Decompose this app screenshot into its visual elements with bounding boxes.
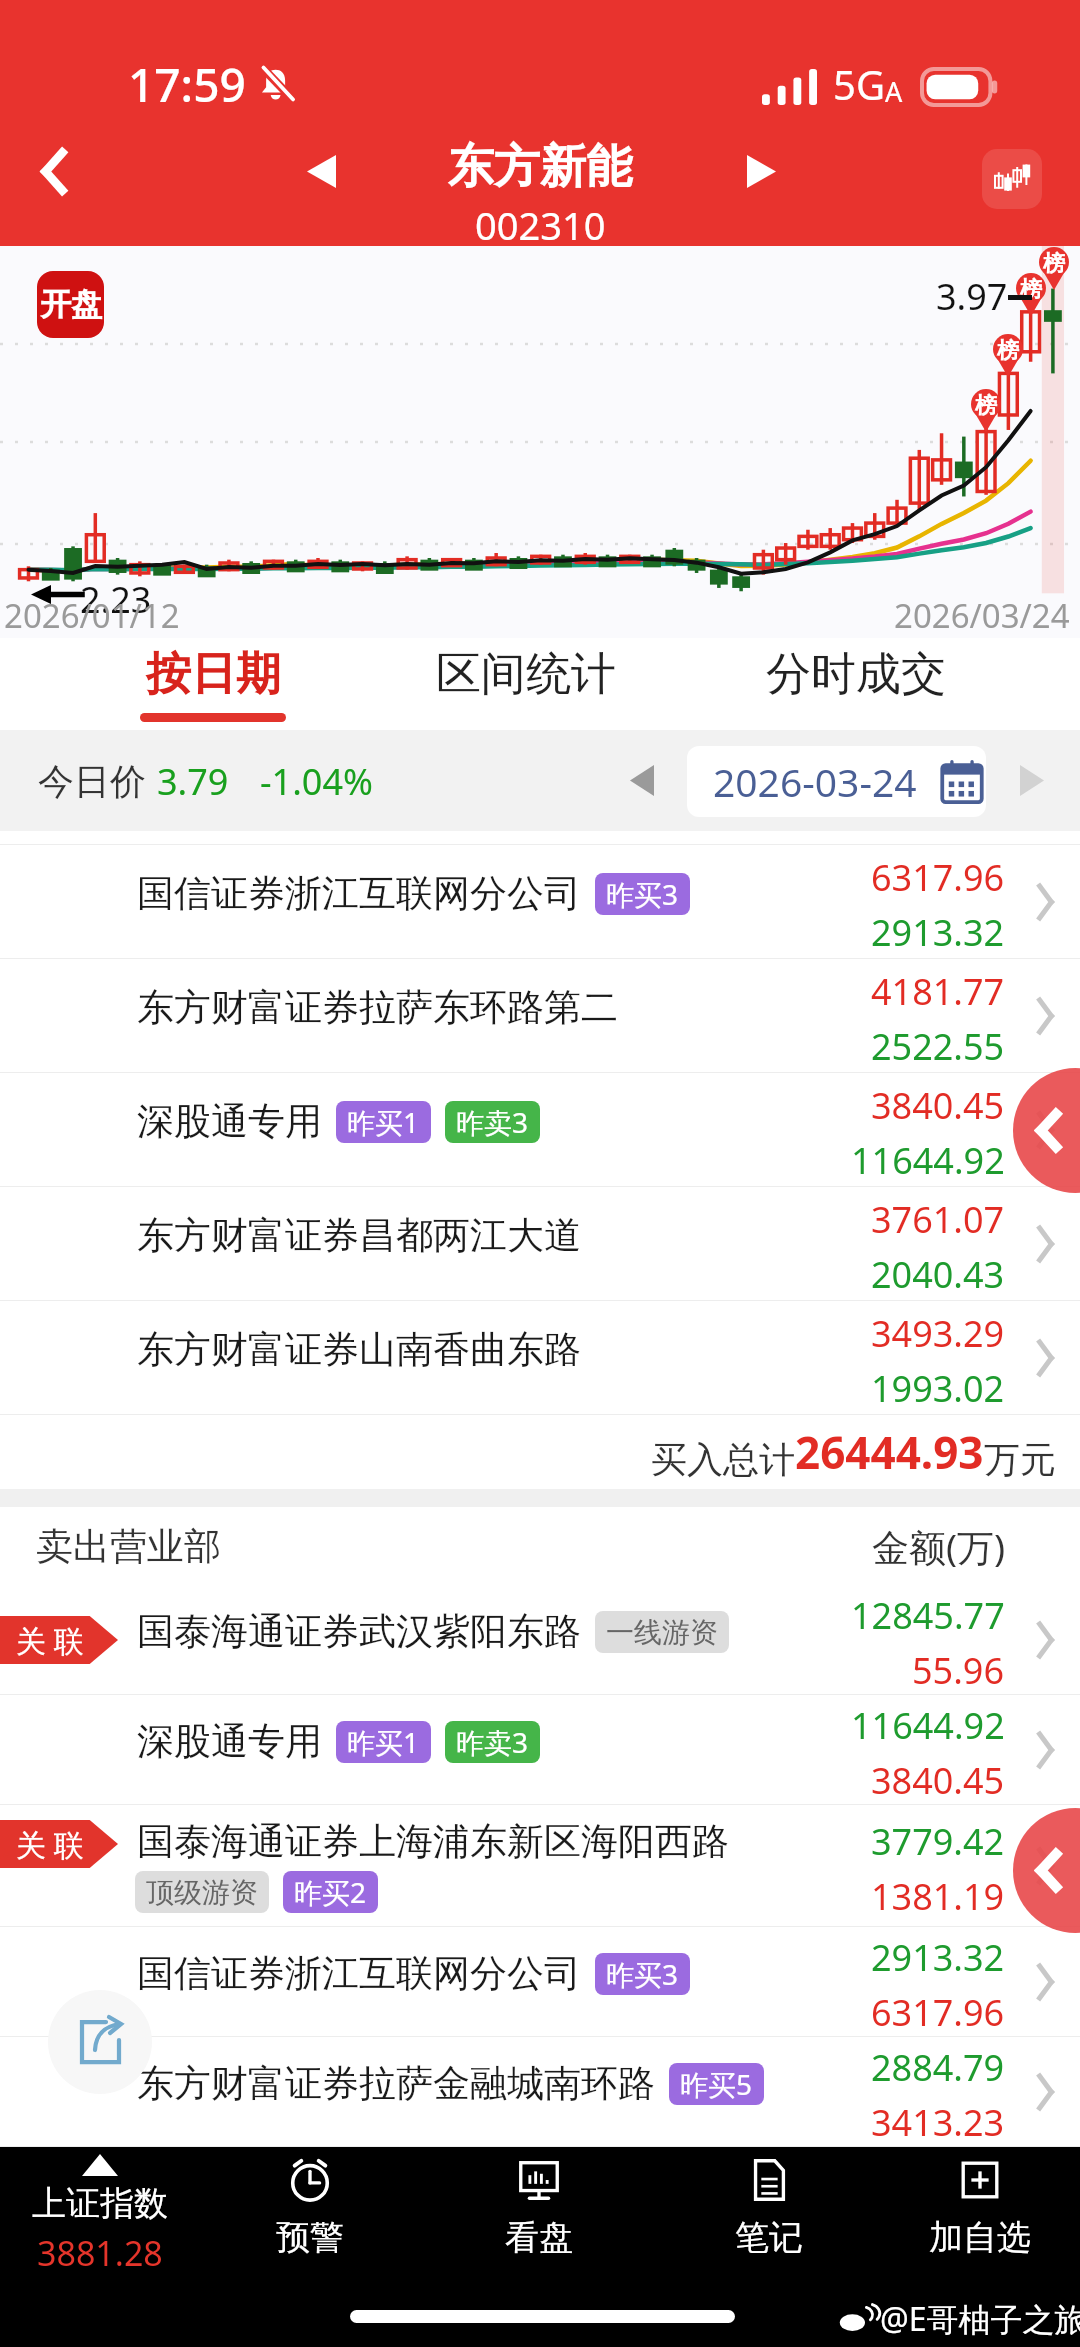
staticText: 国泰海通证券武汉紫阳东路 <box>137 1608 581 1655</box>
staticText: 昨买1 <box>347 1723 420 1761</box>
staticText: 预警 <box>276 2216 344 2259</box>
staticText: 买入总计 <box>651 1437 795 1482</box>
staticText: 3761.07 <box>871 1195 1005 1244</box>
staticText: 3493.29 <box>871 1309 1005 1358</box>
staticText: 看盘 <box>505 2216 573 2259</box>
staticText: 昨买5 <box>680 2065 753 2103</box>
staticText: 榜 <box>1043 250 1065 278</box>
staticText: 关 联 <box>16 1620 84 1661</box>
staticText: 金额(万) <box>872 1521 1006 1572</box>
button[interactable]: Previous day <box>614 752 670 808</box>
button[interactable]: 预警 <box>215 2147 405 2267</box>
button[interactable]: 关 联 <box>0 1585 1080 1695</box>
staticText: 2522.55 <box>871 1022 1005 1071</box>
staticText: 3.79 <box>157 757 229 806</box>
staticText: 东方财富证券拉萨东环路第二 <box>137 984 618 1031</box>
button[interactable]: Back <box>1013 1808 1080 1933</box>
button[interactable]: 区间统计 <box>410 638 641 730</box>
staticText: 按日期 <box>146 646 281 703</box>
button[interactable]: 按日期 <box>97 638 328 730</box>
button[interactable]: 分时成交 <box>740 638 971 730</box>
button[interactable]: Back <box>1013 1068 1080 1193</box>
button[interactable]: Previous stock <box>292 142 350 200</box>
staticText: 6317.96 <box>871 1988 1005 2037</box>
button[interactable]: 东方财富证券昌都两江大道 <box>0 1187 1080 1301</box>
staticText: 2913.32 <box>871 908 1005 957</box>
staticText: 东方财富证券昌都两江大道 <box>137 1212 581 1259</box>
staticText: 关 联 <box>16 1824 84 1865</box>
button[interactable]: 关 联 <box>0 1805 1080 1927</box>
staticText: 2026/03/24 <box>894 593 1070 638</box>
staticText: 国信证券浙江互联网分公司 <box>137 1950 581 1997</box>
staticText: 1993.02 <box>871 1364 1005 1413</box>
staticText: 一线游资 <box>606 1615 718 1650</box>
staticText: 万元 <box>984 1437 1056 1482</box>
staticText: 11644.92 <box>851 1136 1005 1185</box>
button[interactable]: Next stock <box>732 142 790 200</box>
staticText: 55.96 <box>912 1646 1005 1695</box>
staticText: 国泰海通证券上海浦东新区海阳西路 <box>137 1818 729 1865</box>
button[interactable]: 东方财富证券拉萨东环路第二 <box>0 959 1080 1073</box>
button[interactable]: 加自选 <box>885 2147 1075 2267</box>
staticText: 卖出营业部 <box>36 1523 221 1570</box>
button[interactable]: K line chart <box>982 149 1042 209</box>
staticText: 分时成交 <box>766 646 946 703</box>
staticText: 昨买3 <box>606 1955 679 1993</box>
staticText: @E哥柚子之旅 <box>880 2297 1080 2341</box>
staticText: -1.04% <box>260 757 373 806</box>
staticText: 顶级游资 <box>146 1875 258 1910</box>
staticText: 国信证券浙江互联网分公司 <box>137 870 581 917</box>
button[interactable]: 看盘 <box>444 2147 634 2267</box>
staticText: 3840.45 <box>871 1756 1005 1805</box>
staticText: 昨买1 <box>347 1103 420 1141</box>
button[interactable]: 深股通专用 <box>0 1073 1080 1187</box>
button[interactable]: 国信证券浙江互联网分公司 <box>0 845 1080 959</box>
staticText: 1381.19 <box>871 1872 1005 1921</box>
staticText: 昨卖3 <box>456 1103 529 1141</box>
staticText: A <box>885 73 903 110</box>
staticText: 深股通专用 <box>137 1098 322 1145</box>
staticText: 3413.23 <box>871 2098 1005 2147</box>
staticText: 3840.45 <box>871 1081 1005 1130</box>
button[interactable]: Share <box>48 1990 152 2094</box>
button[interactable]: 深股通专用 <box>0 1695 1080 1805</box>
staticText: 东方财富证券山南香曲东路 <box>137 1326 581 1373</box>
staticText: 东方新能 <box>448 138 632 196</box>
staticText: 6317.96 <box>871 853 1005 902</box>
button[interactable]: 东方财富证券拉萨金融城南环路 <box>0 2037 1080 2147</box>
staticText: 上证指数 <box>32 2182 168 2225</box>
button[interactable]: 上证指数 <box>0 2147 200 2267</box>
staticText: 2.23 <box>80 575 152 624</box>
staticText: 榜 <box>975 392 997 420</box>
staticText: 3779.42 <box>871 1817 1005 1866</box>
staticText: 12845.77 <box>851 1591 1005 1640</box>
button[interactable]: 笔记 <box>674 2147 864 2267</box>
staticText: 2040.43 <box>871 1250 1005 1299</box>
staticText: 4181.77 <box>871 967 1005 1016</box>
staticText: 2026/01/12 <box>4 593 180 638</box>
button[interactable]: 国信证券浙江互联网分公司 <box>0 1927 1080 2037</box>
staticText: 昨买2 <box>294 1873 367 1911</box>
button[interactable]: Back <box>19 136 89 206</box>
staticText: 今日价 <box>38 759 146 804</box>
staticText: 002310 <box>475 199 606 251</box>
button[interactable]: 2026-03-24 <box>687 746 986 817</box>
staticText: 开盘 <box>40 285 102 324</box>
staticText: 东方财富证券拉萨金融城南环路 <box>137 2060 655 2107</box>
staticText: 2913.32 <box>871 1933 1005 1982</box>
staticText: 笔记 <box>735 2216 803 2259</box>
button[interactable]: 东方财富证券山南香曲东路 <box>0 1301 1080 1415</box>
staticText: 区间统计 <box>436 646 616 703</box>
staticText: 3881.28 <box>37 2230 163 2267</box>
staticText: 2026-03-24 <box>713 755 917 808</box>
staticText: 榜 <box>1020 276 1042 304</box>
staticText: 昨卖3 <box>456 1723 529 1761</box>
staticText: 3.97 <box>936 272 1008 321</box>
staticText: 2884.79 <box>871 2043 1005 2092</box>
staticText: 深股通专用 <box>137 1718 322 1765</box>
staticText: 昨买3 <box>606 875 679 913</box>
staticText: 加自选 <box>929 2216 1031 2259</box>
button[interactable]: Next day <box>1004 752 1060 808</box>
staticText: 11644.92 <box>851 1701 1005 1750</box>
staticText: 17:59 <box>128 53 246 116</box>
